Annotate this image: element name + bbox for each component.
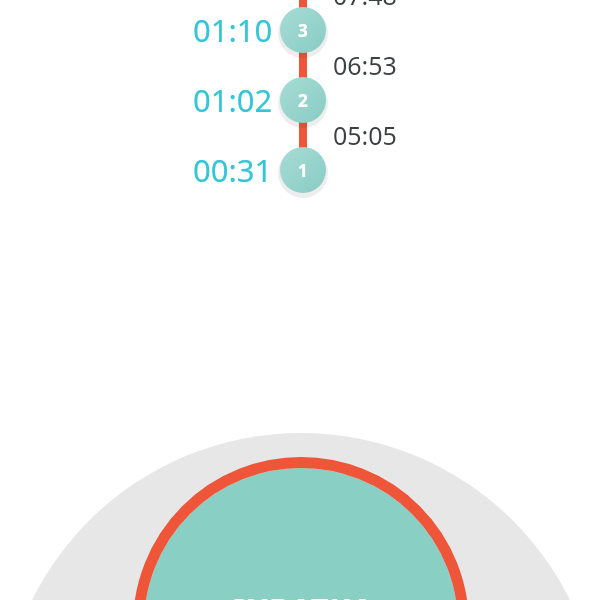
button[interactable]: Схватка 2 <box>170 77 434 123</box>
button[interactable]: Схватка 1 <box>170 147 434 193</box>
button[interactable]: Схватка <box>144 456 460 600</box>
button[interactable]: Схватка 3 <box>170 7 434 53</box>
